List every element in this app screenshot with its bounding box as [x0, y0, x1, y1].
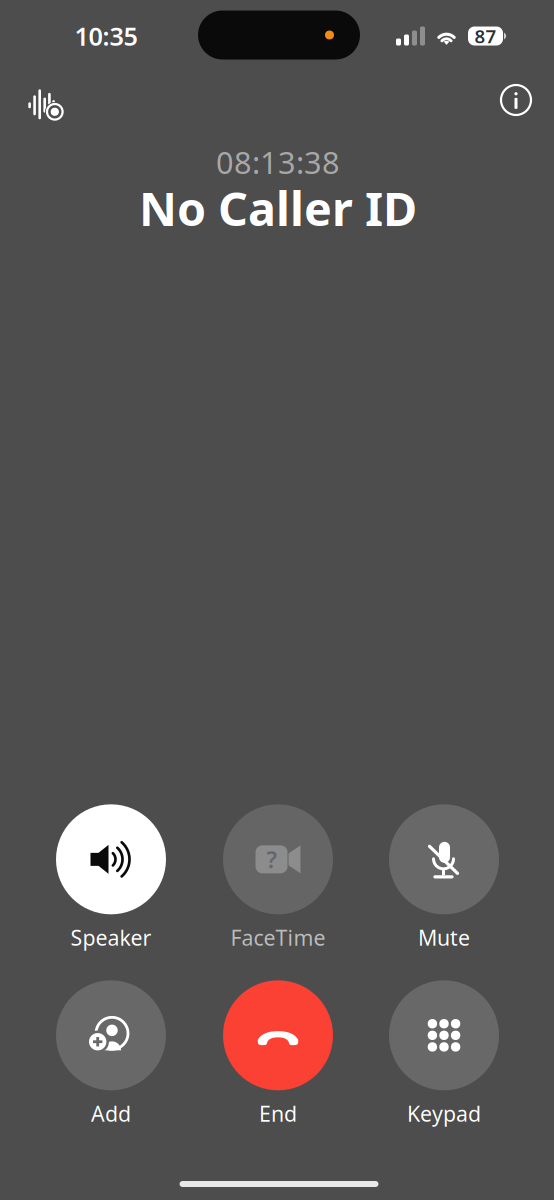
staticText: 10:35 [74, 19, 137, 53]
button[interactable]: Call Info [488, 72, 544, 128]
button[interactable]: Live Voicemail [16, 73, 72, 129]
staticText: Speaker [70, 923, 151, 952]
staticText: No Caller ID [139, 177, 417, 239]
button[interactable]: Speaker [36, 803, 186, 953]
staticText: ? [266, 844, 276, 874]
button[interactable]: End [203, 979, 353, 1129]
button[interactable]: Mute [369, 803, 519, 953]
button[interactable]: Add [36, 979, 186, 1129]
button[interactable]: Keypad [369, 979, 519, 1129]
staticText: End [259, 1099, 297, 1128]
button[interactable]: ? [203, 803, 353, 953]
staticText: 08:13:38 [216, 142, 340, 182]
staticText: Mute [418, 923, 470, 952]
staticText: Keypad [407, 1099, 481, 1128]
staticText: FaceTime [230, 923, 325, 952]
staticText: Add [91, 1099, 131, 1128]
staticText: 87 [474, 24, 496, 48]
